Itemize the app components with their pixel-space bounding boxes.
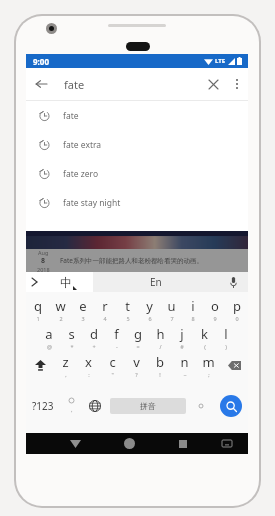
button[interactable]: Back — [26, 68, 56, 100]
staticText: = — [136, 343, 140, 350]
button[interactable]: j — [171, 323, 193, 351]
button[interactable]: Search — [220, 395, 242, 417]
button[interactable]: 拼音 — [110, 398, 186, 414]
button[interactable]: Change language — [82, 379, 108, 433]
staticText: 8 — [191, 315, 195, 322]
button[interactable]: o — [204, 295, 226, 323]
staticText: h — [156, 325, 165, 343]
staticText: g — [134, 325, 142, 343]
button[interactable]: More options — [226, 68, 248, 100]
staticText: n — [180, 353, 189, 371]
staticText: 2 — [59, 315, 63, 322]
button[interactable]: w — [49, 295, 72, 323]
staticText: v — [133, 353, 140, 371]
staticText: l — [224, 325, 228, 343]
staticText: 4 — [103, 315, 107, 322]
staticText: o — [211, 297, 219, 315]
button[interactable]: Hide keyboard — [48, 433, 102, 454]
button[interactable]: f — [105, 323, 127, 351]
button[interactable]: En — [93, 272, 218, 292]
staticText: @ — [47, 343, 52, 350]
button[interactable]: m — [196, 351, 220, 379]
button[interactable]: u — [160, 295, 182, 323]
button[interactable]: v — [124, 351, 148, 379]
staticText: e — [79, 297, 87, 315]
button[interactable]: fate zero — [26, 159, 248, 188]
staticText: k — [201, 325, 208, 343]
button[interactable]: x — [77, 351, 100, 379]
button[interactable]: Backspace — [220, 351, 248, 379]
button[interactable]: Expand toolbar — [26, 272, 43, 292]
staticText: i — [191, 297, 195, 315]
staticText: : — [88, 371, 90, 378]
staticText: j — [180, 325, 184, 343]
staticText: fate stay night — [63, 197, 121, 209]
staticText: c — [109, 353, 116, 371]
button[interactable]: fate stay night — [26, 188, 248, 217]
button[interactable]: q — [26, 295, 49, 323]
button[interactable]: a — [37, 323, 60, 351]
staticText: , — [71, 406, 73, 414]
staticText: ! — [159, 371, 161, 378]
staticText: ) — [225, 343, 227, 350]
staticText: En — [150, 275, 162, 289]
button[interactable]: y — [138, 295, 160, 323]
staticText: 6 — [148, 315, 152, 322]
button[interactable]: ?123 — [26, 379, 60, 433]
staticText: 9:00 — [33, 56, 49, 67]
staticText: ?123 — [32, 399, 54, 413]
button[interactable]: Home — [102, 433, 156, 454]
staticText: p — [233, 297, 241, 315]
button[interactable]: r — [94, 295, 116, 323]
button[interactable]: b — [148, 351, 172, 379]
staticText: z — [62, 353, 69, 371]
button[interactable]: d — [83, 323, 105, 351]
staticText: t — [125, 297, 130, 315]
button[interactable]: Recent apps — [156, 433, 210, 454]
staticText: 1 — [36, 315, 40, 322]
button[interactable]: h — [149, 323, 171, 351]
staticText: 3 — [81, 315, 85, 322]
staticText: q — [34, 297, 42, 315]
staticText: 0 — [235, 315, 239, 322]
button[interactable]: z — [54, 351, 77, 379]
staticText: m — [202, 353, 215, 371]
staticText: b — [156, 353, 164, 371]
button[interactable]: s — [60, 323, 83, 351]
button[interactable]: fate extra — [26, 130, 248, 159]
staticText: f — [114, 325, 119, 343]
button[interactable]: c — [100, 351, 124, 379]
button[interactable]: t — [116, 295, 138, 323]
button[interactable]: l — [215, 323, 237, 351]
button[interactable]: Shift — [26, 351, 54, 379]
button[interactable]: Period — [188, 379, 214, 433]
button[interactable]: fate — [26, 101, 248, 130]
staticText: a — [45, 325, 53, 343]
staticText: 拼音 — [140, 401, 156, 411]
button[interactable]: Voice input — [218, 272, 248, 292]
button[interactable]: k — [193, 323, 215, 351]
button[interactable]: 中 — [43, 272, 93, 292]
button[interactable]: Switch input method — [210, 433, 244, 454]
staticText: u — [167, 297, 176, 315]
staticText: fate — [63, 110, 79, 122]
staticText: ( — [204, 343, 206, 350]
staticText: Aug — [38, 249, 49, 256]
button[interactable]: n — [172, 351, 196, 379]
button[interactable]: g — [127, 323, 149, 351]
staticText: d — [90, 325, 98, 343]
staticText: r — [102, 297, 108, 315]
staticText: ; — [208, 371, 210, 378]
staticText: ~ — [183, 371, 187, 378]
button[interactable]: Clear query — [200, 68, 226, 100]
staticText: LTE — [215, 57, 226, 65]
staticText: fate zero — [63, 168, 99, 180]
button[interactable]: p — [226, 295, 248, 323]
staticText: fate — [64, 77, 200, 92]
button[interactable]: Emoji — [60, 379, 82, 433]
staticText: 7 — [170, 315, 174, 322]
button[interactable]: i — [182, 295, 204, 323]
staticText: * — [70, 343, 74, 350]
button[interactable]: e — [72, 295, 94, 323]
staticText: 8 — [41, 256, 46, 266]
